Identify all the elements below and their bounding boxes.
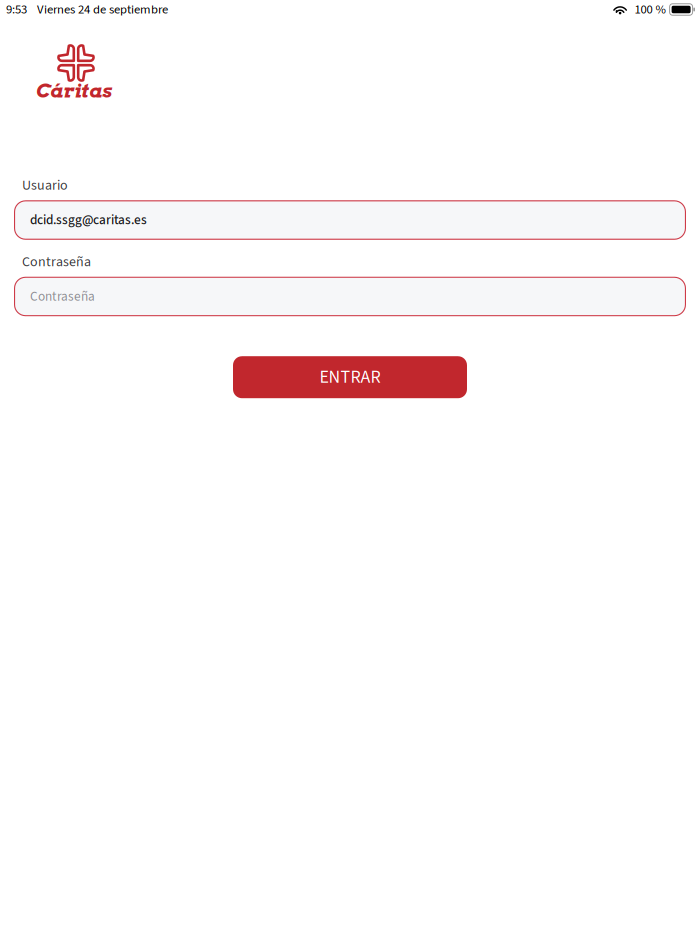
staticText: Usuario (22, 175, 68, 195)
staticText: ENTRAR (319, 364, 380, 390)
staticText: Viernes 24 de septiembre (37, 0, 168, 18)
staticText: dcid.ssgg@caritas.es (30, 210, 147, 229)
staticText: Contraseña (22, 252, 91, 272)
button[interactable]: ENTRAR (233, 356, 467, 398)
staticText: Cáritas (36, 79, 112, 102)
staticText: Contraseña (30, 287, 95, 306)
staticText: 9:53 (6, 0, 27, 18)
button[interactable]: dcid.ssgg@caritas.es (14, 200, 686, 240)
staticText: 100 % (635, 0, 666, 18)
button[interactable]: Contraseña (14, 277, 686, 316)
